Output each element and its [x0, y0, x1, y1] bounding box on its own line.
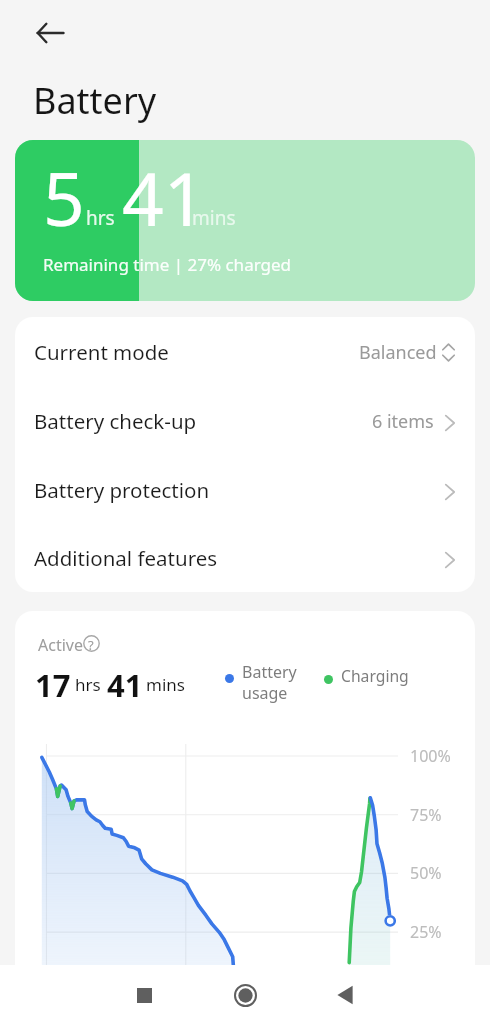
staticText: 100%: [410, 745, 451, 767]
staticText: 75%: [410, 804, 442, 826]
staticText: 6 items: [372, 409, 434, 434]
button[interactable]: Home: [221, 971, 269, 1019]
staticText: 17: [35, 664, 71, 706]
staticText: Remaining time | 27% charged: [43, 253, 292, 276]
staticText: 5: [43, 148, 85, 247]
staticText: ?: [88, 636, 94, 654]
button[interactable]: Recent apps: [120, 971, 168, 1019]
button[interactable]: Battery protection: [15, 455, 475, 524]
staticText: hrs: [86, 205, 115, 231]
staticText: 41: [122, 148, 206, 247]
staticText: Charging: [341, 665, 409, 686]
button[interactable]: Additional features: [15, 524, 475, 592]
staticText: hrs: [75, 673, 101, 696]
staticText: Battery usage: [242, 661, 297, 704]
staticText: Battery protection: [34, 476, 210, 504]
staticText: 25%: [410, 921, 442, 943]
staticText: Current mode: [34, 338, 169, 366]
staticText: Additional features: [34, 544, 218, 572]
button[interactable]: Current mode: [15, 317, 475, 386]
button[interactable]: 5: [15, 140, 475, 301]
button[interactable]: Back: [28, 11, 72, 55]
staticText: 50%: [410, 862, 442, 884]
staticText: mins: [192, 205, 236, 231]
staticText: Battery check-up: [34, 407, 197, 435]
button[interactable]: Back: [321, 971, 369, 1019]
staticText: mins: [146, 673, 185, 696]
staticText: Balanced: [359, 340, 437, 365]
button[interactable]: Battery check-up: [15, 386, 475, 455]
staticText: Active: [38, 634, 83, 656]
staticText: Battery: [33, 76, 157, 125]
staticText: 41: [107, 664, 143, 706]
